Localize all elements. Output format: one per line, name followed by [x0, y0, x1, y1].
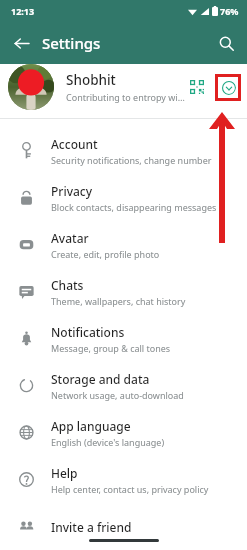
button[interactable]: Notifications [0, 315, 247, 362]
button[interactable]: Account [0, 127, 247, 174]
button[interactable]: Avatar [0, 221, 247, 268]
staticText: App language [51, 418, 131, 434]
staticText: English (device's language) [51, 436, 165, 448]
button[interactable]: App language [0, 409, 247, 456]
staticText: Message, group & call tones [51, 342, 171, 354]
staticText: Theme, wallpapers, chat history [51, 295, 186, 307]
staticText: Chats [51, 277, 84, 293]
staticText: Block contacts, disappearing messages [51, 201, 217, 213]
staticText: Avatar [51, 230, 89, 246]
button[interactable]: Search [211, 28, 241, 58]
button[interactable]: Back [6, 28, 36, 58]
button[interactable]: Help [0, 456, 247, 503]
staticText: Settings [42, 33, 101, 53]
staticText: Security notifications, change number [51, 154, 212, 166]
staticText: 76% [220, 5, 239, 17]
staticText: Network usage, auto-download [51, 389, 184, 401]
button[interactable]: Privacy [0, 174, 247, 221]
staticText: Help center, contact us, privacy policy [51, 483, 209, 495]
staticText: Notifications [51, 324, 125, 340]
staticText: Create, edit, profile photo [51, 248, 160, 260]
button[interactable]: Shobhit [0, 64, 247, 118]
staticText: Shobhit [66, 71, 116, 89]
staticText: Invite a friend [51, 519, 132, 535]
button[interactable]: Expand profile options [221, 80, 236, 95]
staticText: 12:13 [11, 5, 35, 17]
staticText: Storage and data [51, 371, 150, 387]
button[interactable]: Invite a friend [0, 503, 247, 550]
button[interactable]: QR code [185, 75, 209, 99]
button[interactable]: Storage and data [0, 362, 247, 409]
staticText: Account [51, 136, 98, 152]
staticText: Contributing to entropy with co... [66, 91, 185, 103]
staticText: Help [51, 465, 78, 481]
button[interactable]: Chats [0, 268, 247, 315]
staticText: Privacy [51, 183, 93, 199]
